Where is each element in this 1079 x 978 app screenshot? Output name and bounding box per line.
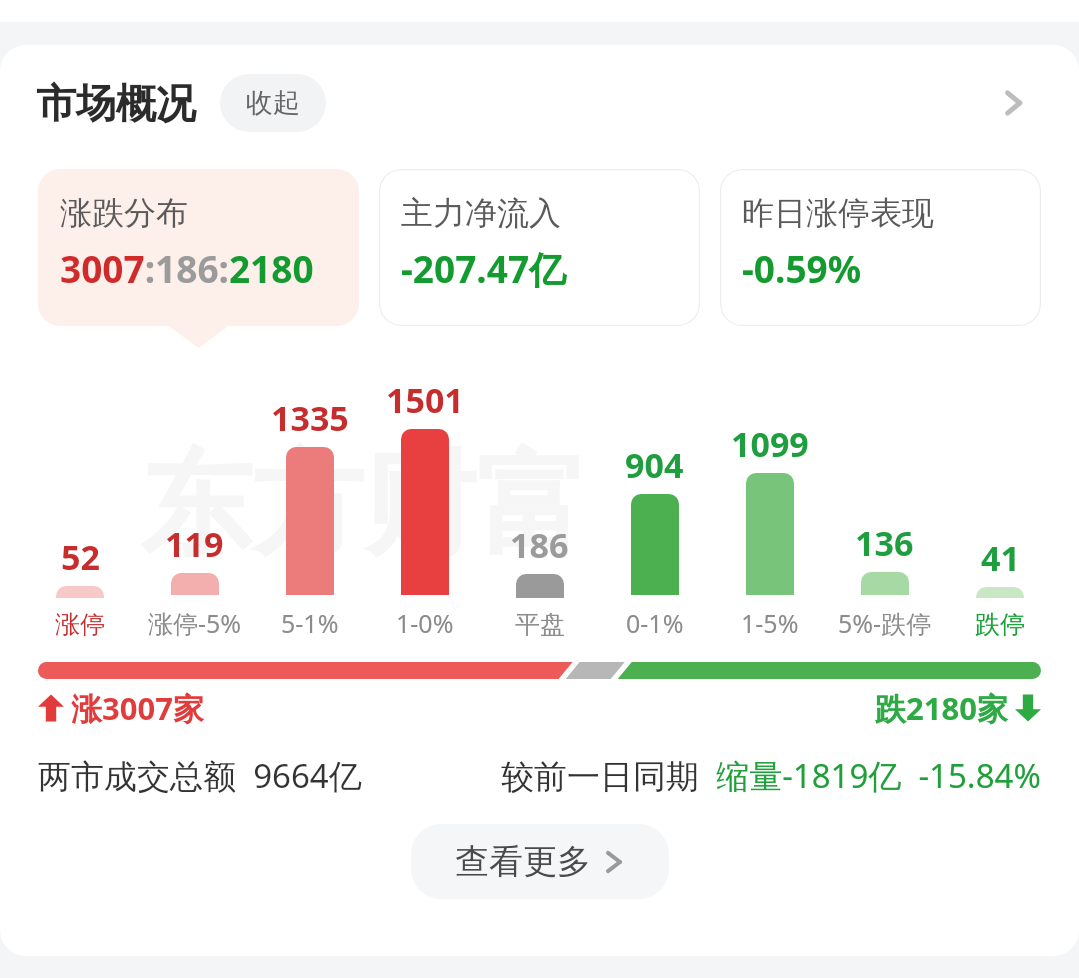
button[interactable]: 涨跌分布 [38, 169, 359, 326]
staticText: 1-5% [741, 606, 799, 640]
staticText: 1501 [386, 377, 464, 423]
staticText: 东方财富 [140, 435, 588, 576]
staticText: 119 [165, 521, 224, 567]
button[interactable]: 昨日涨停表现 [720, 169, 1041, 326]
staticText: 5-1% [281, 606, 339, 640]
staticText: 较前一日同期 缩量-1819亿 -15.84% [501, 753, 1041, 798]
staticText: 收起 [246, 86, 300, 120]
staticText: 136 [855, 520, 914, 566]
button[interactable]: More details [983, 73, 1043, 133]
staticText: 两市成交总额 9664亿 [38, 753, 362, 798]
staticText: 0-1% [626, 606, 684, 640]
button[interactable]: 收起 [220, 74, 326, 132]
staticText: 市场概况 [36, 78, 196, 128]
staticText: 查看更多 [455, 840, 591, 883]
staticText: 主力净流入 [401, 193, 561, 233]
staticText: 平盘 [515, 609, 565, 640]
staticText: 52 [61, 534, 100, 580]
staticText: 1335 [271, 395, 349, 441]
staticText: 涨3007家 [71, 687, 204, 729]
staticText: 涨停-5% [148, 606, 242, 640]
staticText: 跌2180家 [875, 687, 1008, 729]
staticText: 3007:186:2180 [60, 243, 314, 293]
button[interactable]: 查看更多 [411, 824, 669, 899]
staticText: -207.47亿 [401, 243, 567, 294]
staticText: 186 [510, 522, 569, 568]
staticText: 41 [981, 535, 1020, 581]
staticText: 1-0% [396, 606, 454, 640]
button[interactable]: 主力净流入 [379, 169, 700, 326]
staticText: 涨停 [55, 609, 105, 640]
staticText: 跌停 [975, 609, 1025, 640]
staticText: -0.59% [742, 243, 862, 293]
staticText: 904 [625, 442, 684, 488]
staticText: 涨跌分布 [60, 193, 188, 233]
staticText: 昨日涨停表现 [742, 193, 934, 233]
staticText: 1099 [731, 421, 809, 467]
staticText: 5%-跌停 [838, 606, 932, 640]
